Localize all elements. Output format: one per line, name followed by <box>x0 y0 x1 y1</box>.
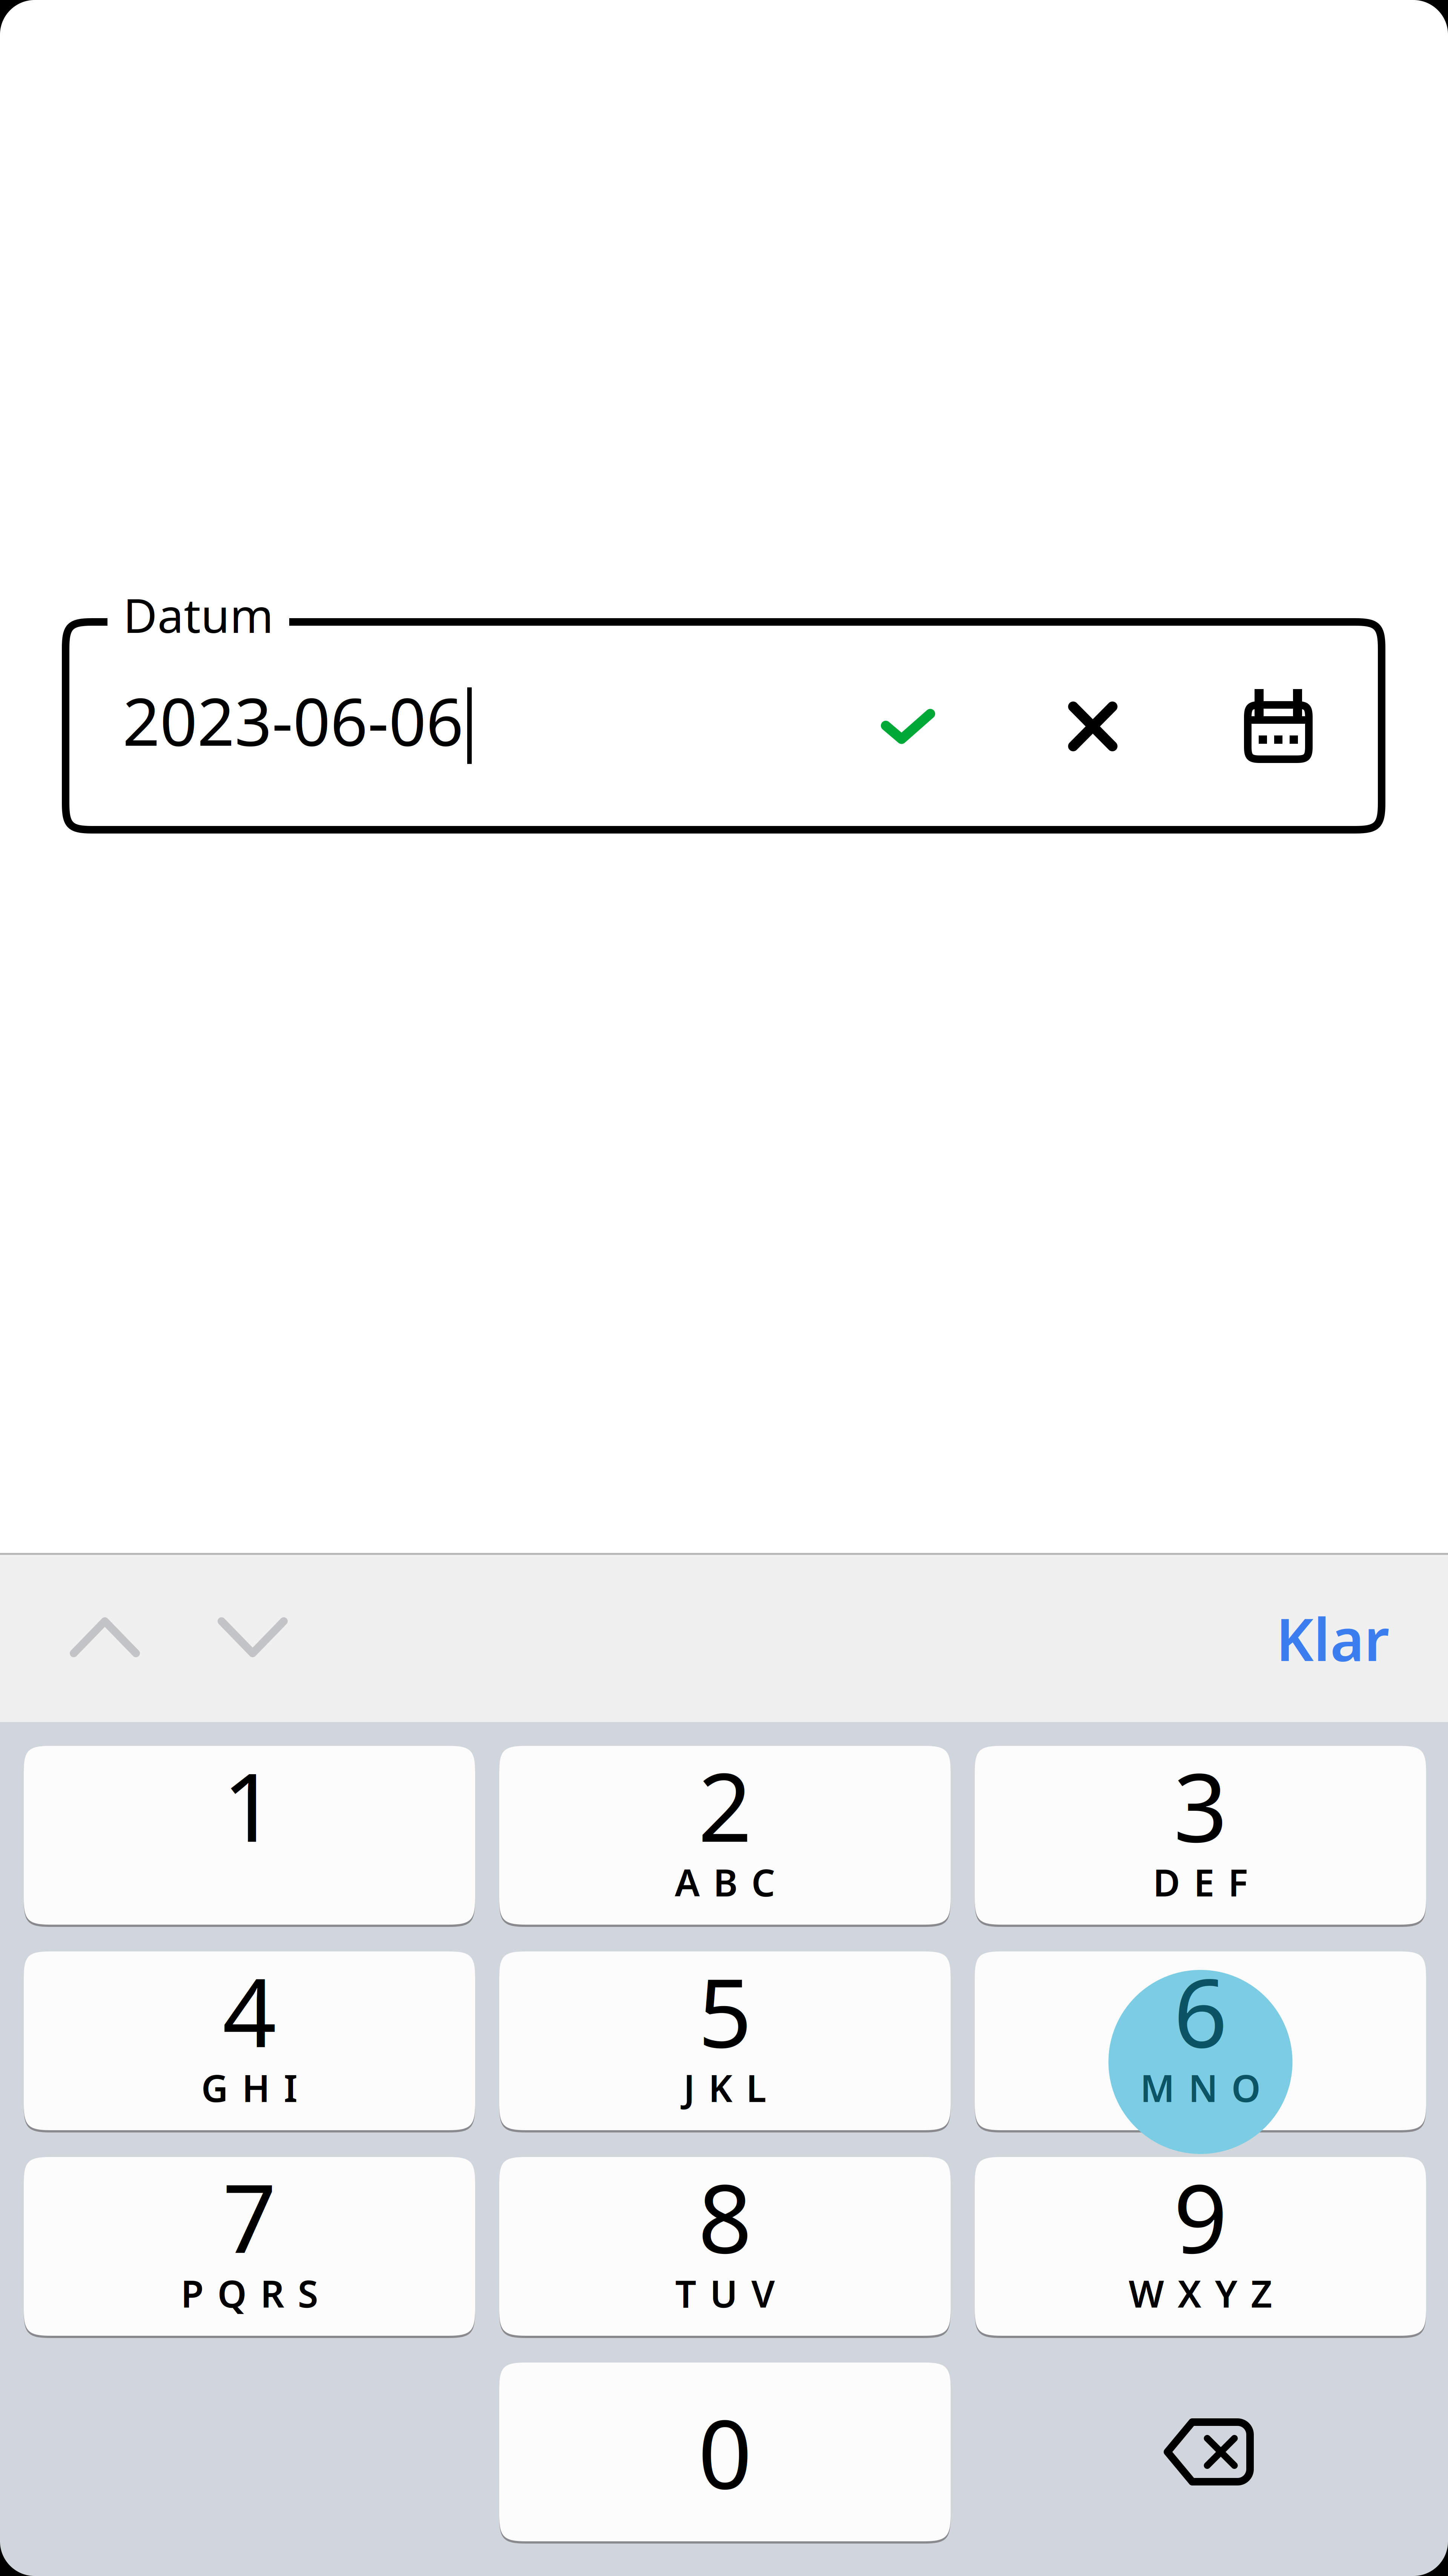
staticText: 8 <box>698 2153 752 2279</box>
button[interactable]: 3 <box>975 1746 1426 1925</box>
staticText: 5 <box>698 1948 752 2073</box>
button[interactable]: 4 <box>24 1951 475 2130</box>
button[interactable]: 1 <box>24 1746 475 1925</box>
button[interactable]: Next field <box>196 1581 309 1694</box>
button[interactable]: 9 <box>975 2157 1426 2336</box>
button[interactable]: 2 <box>499 1746 951 1925</box>
staticText: 3 <box>1173 1742 1227 1868</box>
staticText: Klar <box>1276 1600 1389 1677</box>
staticText: 1 <box>222 1742 276 1868</box>
staticText: D E F <box>1153 1857 1248 1907</box>
staticText: J K L <box>683 2063 766 2112</box>
button[interactable]: 6 <box>975 1951 1426 2130</box>
button[interactable]: Delete <box>975 2363 1426 2541</box>
staticText: 2023-06-06 <box>123 677 463 764</box>
staticText: W X Y Z <box>1129 2268 1272 2318</box>
staticText: 4 <box>222 1948 276 2073</box>
staticText: G H I <box>201 2063 298 2112</box>
staticText: P Q R S <box>181 2268 318 2318</box>
staticText: 6 <box>1173 1948 1227 2073</box>
staticText: Datum <box>123 584 274 646</box>
staticText: A B C <box>675 1857 775 1907</box>
button[interactable]: 5 <box>499 1951 951 2130</box>
button[interactable]: Accept date <box>859 677 957 775</box>
button[interactable]: 7 <box>24 2157 475 2336</box>
button[interactable]: 0 <box>499 2363 951 2541</box>
button[interactable]: Previous field <box>48 1581 161 1694</box>
staticText: 0 <box>698 2389 752 2515</box>
staticText: 7 <box>222 2153 276 2279</box>
staticText: T U V <box>675 2268 775 2318</box>
staticText: 9 <box>1173 2153 1227 2279</box>
staticText: M N O <box>1140 2063 1261 2112</box>
button[interactable]: Clear date <box>1044 677 1142 775</box>
button[interactable]: Klar <box>1253 1586 1412 1691</box>
staticText: 2 <box>698 1742 752 1868</box>
button[interactable]: Open calendar picker <box>1229 677 1327 775</box>
button[interactable]: 8 <box>499 2157 951 2336</box>
